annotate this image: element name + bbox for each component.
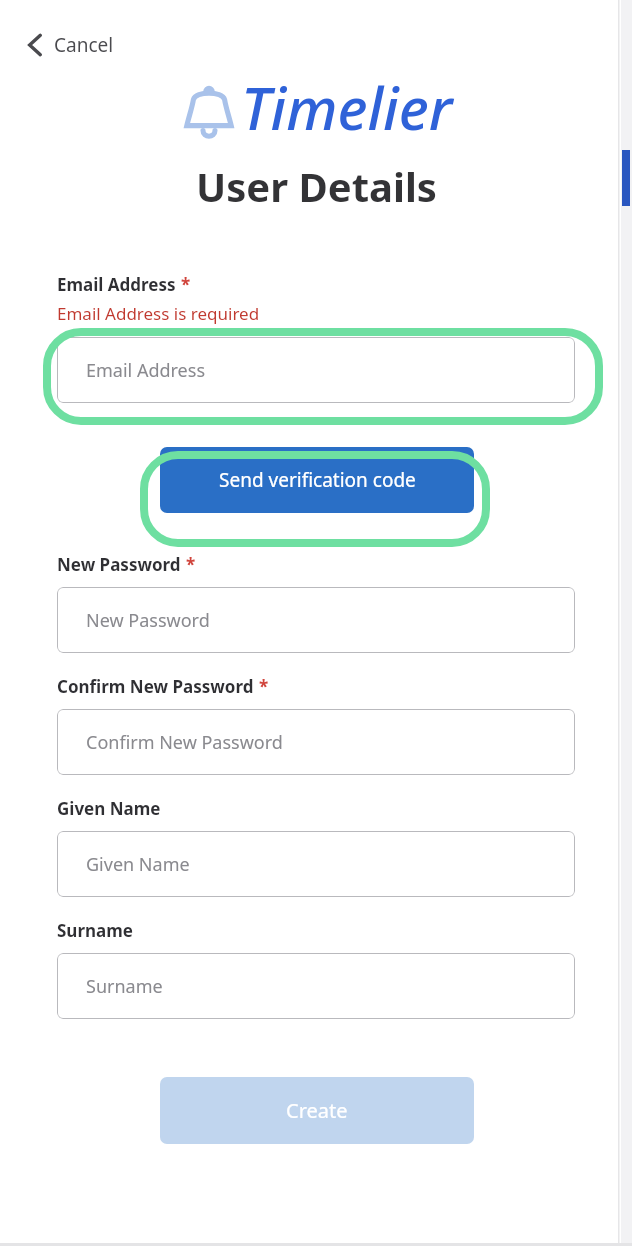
button[interactable]: Cancel (22, 28, 120, 62)
staticText: Confirm New Password (86, 730, 283, 755)
staticText: Given Name (57, 797, 161, 820)
staticText: Given Name (86, 852, 190, 877)
staticText: New Password (57, 553, 181, 576)
staticText: * (181, 273, 191, 296)
staticText: User Details (196, 159, 437, 213)
button[interactable]: Surname (57, 953, 575, 1019)
staticText: Create (286, 1097, 348, 1124)
staticText: New Password (86, 608, 210, 633)
staticText: Cancel (54, 32, 114, 58)
staticText: Send verification code (219, 467, 416, 493)
button[interactable]: Create (160, 1077, 474, 1144)
button[interactable]: Given Name (57, 831, 575, 897)
button[interactable]: Send verification code (160, 447, 474, 513)
staticText: Confirm New Password (57, 675, 254, 698)
staticText: Email Address (57, 273, 176, 296)
staticText: * (186, 553, 196, 576)
staticText: Email Address (86, 358, 206, 383)
staticText: Surname (57, 919, 133, 942)
staticText: * (259, 675, 269, 698)
button[interactable]: Confirm New Password (57, 709, 575, 775)
button[interactable]: Email Address (57, 337, 575, 403)
button[interactable]: New Password (57, 587, 575, 653)
staticText: Surname (86, 974, 163, 999)
staticText: Email Address is required (57, 302, 260, 325)
staticText: Timelier (241, 68, 453, 147)
